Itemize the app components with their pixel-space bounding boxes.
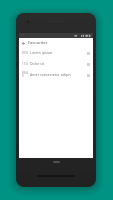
- button[interactable]: Options: [85, 50, 91, 56]
- staticText: 07:00 AM: [22, 51, 28, 55]
- staticText: 11:30 AM: [22, 62, 28, 66]
- button[interactable]: 11:30 AM: [19, 58, 93, 69]
- button[interactable]: 03:45 PM: [19, 69, 93, 80]
- button[interactable]: Options: [85, 61, 91, 67]
- button[interactable]: Options: [85, 72, 91, 78]
- button[interactable]: Back: [20, 40, 26, 46]
- button[interactable]: 07:00 AM: [19, 47, 93, 58]
- staticText: Favourites: [28, 40, 48, 45]
- staticText: Amet consectetur adipis: [30, 72, 85, 77]
- staticText: Dolor sit: [30, 61, 85, 66]
- staticText: 03:45 PM: [22, 71, 28, 78]
- staticText: Lorem ipsum: [30, 50, 85, 55]
